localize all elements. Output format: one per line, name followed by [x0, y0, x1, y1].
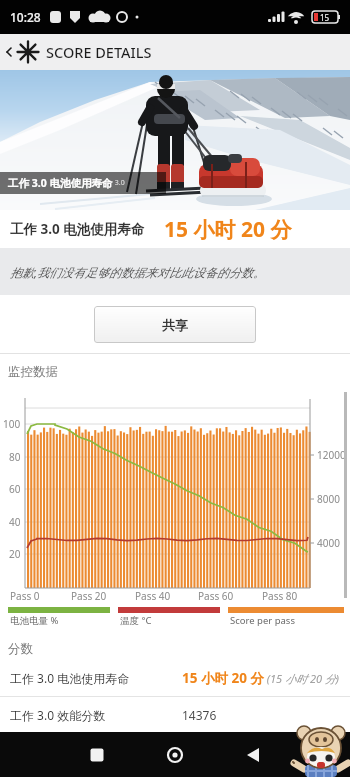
button[interactable] — [67, 732, 127, 777]
staticText: 抱歉,我们没有足够的数据来对比此设备的分数。 — [10, 264, 266, 280]
staticText: 工作 3.0 电池使用寿命 — [10, 670, 130, 686]
staticText: 工作 3.0 电池使用寿命 — [10, 220, 145, 238]
staticText: 温度 °C — [120, 614, 152, 627]
staticText: 工作 3.0 效能分数 — [10, 707, 106, 723]
staticText: 15 小时 20 分 — [164, 215, 292, 244]
staticText: 电池电量 % — [10, 614, 59, 627]
staticText: 共享 — [162, 317, 188, 333]
staticText: 分数 — [8, 641, 33, 657]
staticText: Score per pass — [230, 614, 295, 627]
staticText: 15 小时 20 分 — [182, 669, 264, 687]
staticText: 14376 — [182, 707, 217, 723]
staticText: 工作 3.0 电池使用寿命 — [8, 176, 113, 190]
button[interactable]: 工作 3.0 电池使用寿命 — [0, 660, 350, 696]
button[interactable]: 共享 — [94, 306, 256, 343]
staticText: SCORE DETAILS — [46, 42, 152, 62]
button[interactable] — [223, 732, 283, 777]
staticText: 3.0 — [113, 178, 125, 188]
staticText: 10:28 — [10, 9, 41, 25]
button[interactable] — [145, 732, 205, 777]
staticText: (15 小时 20 分) — [264, 671, 340, 686]
staticText: 监控数据 — [8, 364, 58, 380]
button[interactable]: 工作 3.0 效能分数 — [0, 697, 350, 732]
staticText: 15 — [320, 12, 330, 23]
